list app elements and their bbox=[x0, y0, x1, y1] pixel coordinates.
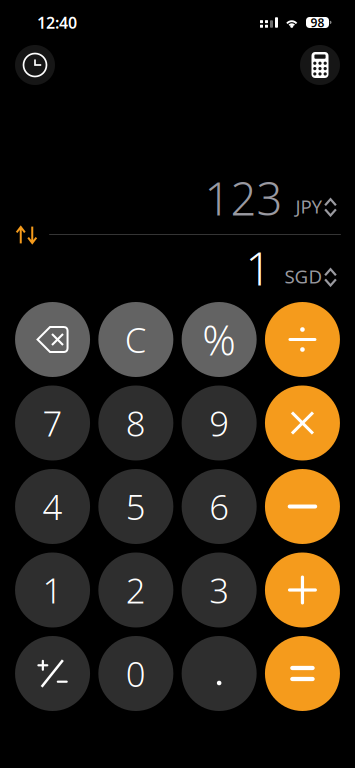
button[interactable]: Divide bbox=[265, 302, 340, 377]
button[interactable]: Swap currencies bbox=[15, 221, 38, 245]
button[interactable]: History bbox=[15, 45, 55, 85]
staticText: 0 bbox=[126, 650, 146, 696]
button[interactable]: 4 bbox=[15, 469, 90, 544]
staticText: 7 bbox=[43, 400, 63, 446]
button[interactable]: 9 bbox=[182, 385, 257, 460]
staticText: % bbox=[202, 312, 236, 367]
button[interactable]: 6 bbox=[182, 469, 257, 544]
button[interactable]: Multiply bbox=[265, 385, 340, 460]
button[interactable]: 3 bbox=[182, 552, 257, 627]
button[interactable]: 0 bbox=[98, 636, 173, 711]
button[interactable]: Plus minus bbox=[15, 636, 90, 711]
staticText: 1 bbox=[245, 238, 271, 298]
staticText: 2 bbox=[126, 567, 146, 613]
staticText: 9 bbox=[209, 400, 229, 446]
button[interactable]: Minus bbox=[265, 469, 340, 544]
staticText: 8 bbox=[126, 400, 146, 446]
button[interactable]: 1 bbox=[0, 246, 355, 290]
staticText: 123 bbox=[204, 168, 282, 228]
staticText: 3 bbox=[209, 567, 229, 613]
button[interactable]: 1 bbox=[15, 552, 90, 627]
staticText: 1 bbox=[43, 567, 63, 613]
staticText: C bbox=[125, 316, 147, 362]
button[interactable]: 123 bbox=[0, 176, 355, 220]
button[interactable]: 2 bbox=[98, 552, 173, 627]
staticText: SGD bbox=[284, 264, 322, 289]
button[interactable]: Equals bbox=[265, 636, 340, 711]
button[interactable]: 5 bbox=[98, 469, 173, 544]
button[interactable]: 8 bbox=[98, 385, 173, 460]
button[interactable]: Calculator bbox=[300, 45, 340, 85]
button[interactable]: 7 bbox=[15, 385, 90, 460]
button[interactable]: C bbox=[98, 302, 173, 377]
staticText: 98 bbox=[310, 14, 324, 30]
button[interactable]: Plus bbox=[265, 552, 340, 627]
staticText: 4 bbox=[43, 483, 63, 529]
staticText: 12:40 bbox=[37, 12, 77, 33]
button[interactable]: % bbox=[182, 302, 257, 377]
button[interactable]: Delete bbox=[15, 302, 90, 377]
staticText: 5 bbox=[126, 483, 146, 529]
staticText: 6 bbox=[209, 483, 229, 529]
button[interactable]: Decimal point bbox=[182, 636, 257, 711]
staticText: JPY bbox=[295, 194, 322, 219]
